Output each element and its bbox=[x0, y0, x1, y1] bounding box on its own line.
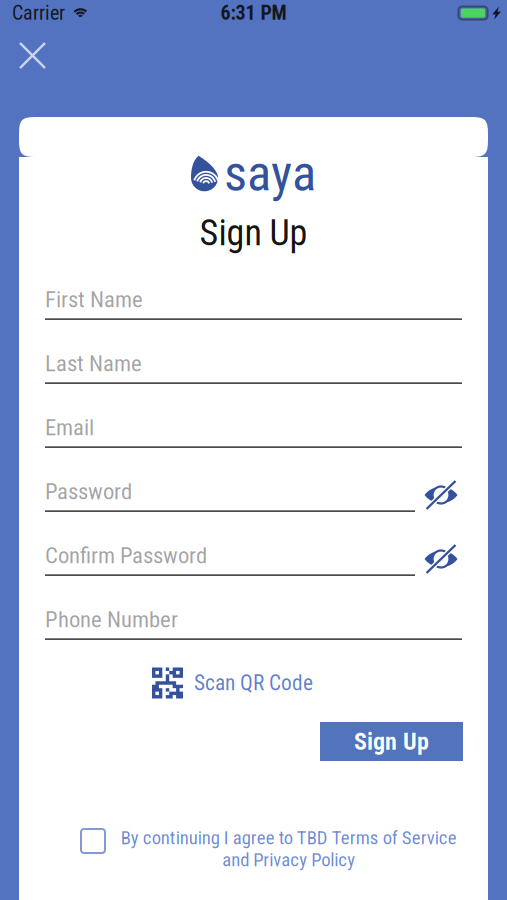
staticText: Carrier bbox=[12, 1, 65, 25]
staticText: Password bbox=[45, 478, 132, 505]
staticText: Last Name bbox=[45, 350, 142, 377]
button[interactable]: Scan QR Code bbox=[152, 666, 313, 700]
staticText: Sign Up bbox=[199, 212, 307, 254]
staticText: By continuing I agree to TBD Terms of Se… bbox=[120, 827, 456, 871]
button[interactable]: Close bbox=[10, 33, 55, 78]
staticText: Phone Number bbox=[45, 606, 178, 633]
staticText: Confirm Password bbox=[45, 542, 207, 569]
staticText: Sign Up bbox=[354, 727, 429, 755]
button[interactable]: By continuing I agree to TBD Terms of Se… bbox=[81, 827, 459, 867]
staticText: 6:31 PM bbox=[220, 1, 286, 25]
button[interactable]: Show Confirm Password bbox=[420, 530, 462, 574]
button[interactable]: Show Password bbox=[420, 466, 462, 510]
staticText: saya bbox=[224, 144, 316, 203]
staticText: Scan QR Code bbox=[194, 670, 313, 695]
staticText: First Name bbox=[45, 286, 143, 313]
button[interactable]: Sign Up bbox=[320, 722, 463, 761]
staticText: Email bbox=[45, 414, 94, 441]
